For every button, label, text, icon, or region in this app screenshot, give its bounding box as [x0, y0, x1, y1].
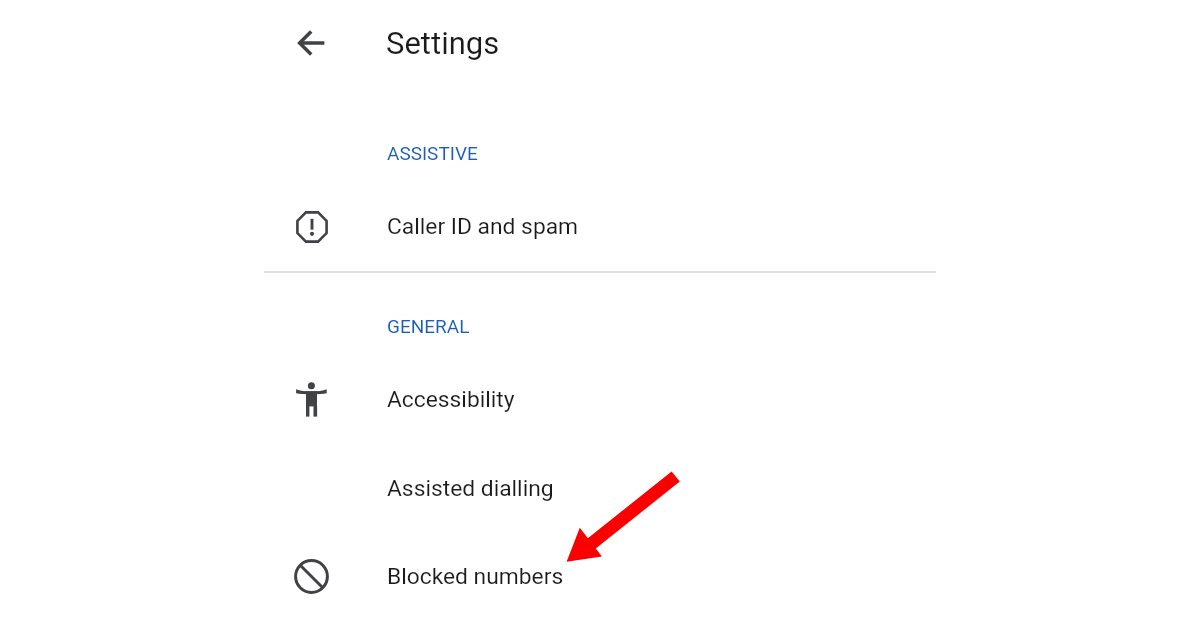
button[interactable]: Caller ID and spam: [0, 195, 1200, 257]
staticText: Blocked numbers: [387, 563, 564, 590]
staticText: GENERAL: [387, 315, 470, 337]
button[interactable]: Accessibility: [0, 368, 1200, 430]
button[interactable]: Assisted dialling: [0, 457, 1200, 519]
staticText: ASSISTIVE: [387, 142, 478, 164]
staticText: Settings: [386, 25, 500, 61]
staticText: Assisted dialling: [387, 475, 554, 502]
button[interactable]: Back: [288, 19, 336, 67]
button[interactable]: Blocked numbers: [0, 545, 1200, 607]
staticText: Accessibility: [387, 386, 515, 413]
staticText: Caller ID and spam: [387, 213, 579, 240]
